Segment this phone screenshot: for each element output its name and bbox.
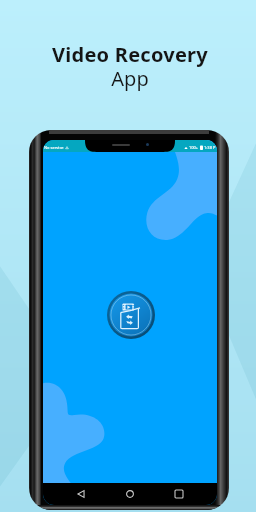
button[interactable]: Recent apps: [168, 483, 190, 505]
staticText: Video Recovery: [52, 41, 208, 68]
button[interactable]: Video Recovery app icon: [107, 291, 155, 339]
button[interactable]: Back: [70, 483, 92, 505]
button[interactable]: Home: [119, 483, 141, 505]
staticText: 1:38 P: [204, 145, 216, 150]
staticText: App: [111, 65, 149, 92]
staticText: No service: [44, 145, 64, 150]
staticText: 100+: [189, 145, 199, 150]
